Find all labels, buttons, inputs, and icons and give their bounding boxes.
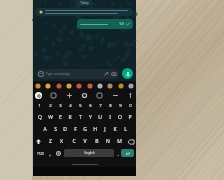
button[interactable]: C xyxy=(69,137,78,146)
button[interactable]: , xyxy=(46,149,54,158)
button[interactable]: U xyxy=(95,111,105,123)
staticText: 2 xyxy=(49,103,52,109)
button[interactable]: Emoji xyxy=(107,83,113,89)
staticText: A xyxy=(43,126,47,133)
staticText: Today xyxy=(80,1,89,5)
button[interactable]: Y xyxy=(85,111,95,123)
staticText: 0 xyxy=(129,103,132,109)
button[interactable]: J xyxy=(100,123,110,135)
button[interactable]: Shift xyxy=(34,137,43,146)
staticText: 6 xyxy=(89,103,92,109)
button[interactable]: 5 xyxy=(75,100,85,111)
button[interactable]: English xyxy=(64,149,114,157)
button[interactable]: Keyboard xyxy=(35,92,42,99)
staticText: 9:41 xyxy=(119,22,125,26)
staticText: G xyxy=(83,126,87,133)
staticText: E xyxy=(59,114,62,121)
button[interactable]: O xyxy=(115,111,125,123)
button[interactable]: 4 xyxy=(65,100,75,111)
button[interactable]: A xyxy=(39,123,50,135)
staticText: T xyxy=(79,114,82,121)
button[interactable]: E xyxy=(55,111,65,123)
button[interactable]: Emoji xyxy=(97,83,103,89)
button[interactable]: V xyxy=(80,137,89,146)
button[interactable]: Q xyxy=(34,111,45,123)
button[interactable]: M xyxy=(115,137,124,146)
button[interactable]: Emoji xyxy=(36,69,119,79)
staticText: J xyxy=(104,126,106,133)
staticText: N xyxy=(106,138,110,145)
button[interactable]: 7 xyxy=(95,100,105,111)
button[interactable]: 1 xyxy=(34,100,45,111)
button[interactable]: Voice message xyxy=(122,68,133,79)
button[interactable]: 2 xyxy=(45,100,55,111)
staticText: ?123 xyxy=(37,152,44,156)
staticText: I xyxy=(109,114,111,121)
button[interactable]: I xyxy=(105,111,115,123)
button[interactable]: N xyxy=(103,137,112,146)
button[interactable] xyxy=(36,8,133,16)
staticText: Q xyxy=(38,114,42,121)
button[interactable]: Tool 5 xyxy=(112,92,119,99)
staticText: V xyxy=(83,138,87,145)
staticText: 4 xyxy=(69,103,72,109)
button[interactable]: Enter xyxy=(121,149,134,157)
staticText: D xyxy=(63,126,67,133)
button[interactable]: Emoji xyxy=(35,83,41,89)
staticText: W xyxy=(48,114,53,121)
staticText: O xyxy=(118,114,122,121)
button[interactable]: 9 xyxy=(115,100,125,111)
button[interactable]: Tool 1 xyxy=(50,92,57,99)
button[interactable]: Emoji xyxy=(118,83,124,89)
button[interactable]: 9:41 xyxy=(77,19,133,29)
button[interactable]: Emoji xyxy=(66,83,72,89)
button[interactable]: X xyxy=(57,137,66,146)
button[interactable]: Tool 2 xyxy=(66,92,73,99)
button[interactable]: S xyxy=(50,123,60,135)
button[interactable]: 6 xyxy=(85,100,95,111)
button[interactable]: Emoji xyxy=(45,83,51,89)
staticText: B xyxy=(95,138,99,145)
staticText: 1 xyxy=(38,103,41,109)
button[interactable]: G xyxy=(80,123,90,135)
button[interactable]: T xyxy=(75,111,85,123)
staticText: Y xyxy=(89,114,92,121)
staticText: H xyxy=(93,126,97,133)
button[interactable]: F xyxy=(70,123,80,135)
staticText: F xyxy=(74,126,77,133)
button[interactable]: K xyxy=(110,123,120,135)
button[interactable]: Z xyxy=(46,137,55,146)
button[interactable]: P xyxy=(125,111,135,123)
button[interactable]: Emoji xyxy=(76,83,82,89)
button[interactable]: Tool 6 xyxy=(127,92,134,99)
button[interactable]: ?123 xyxy=(35,149,46,158)
button[interactable]: 0 xyxy=(125,100,135,111)
staticText: Type a message xyxy=(46,72,103,76)
button[interactable]: D xyxy=(60,123,70,135)
staticText: 9 xyxy=(119,103,122,109)
staticText: 7 xyxy=(99,103,102,109)
button[interactable]: L xyxy=(120,123,130,135)
button[interactable]: Emoji xyxy=(56,83,62,89)
staticText: U xyxy=(98,114,102,121)
staticText: , xyxy=(49,151,51,157)
button[interactable]: 3 xyxy=(55,100,65,111)
button[interactable]: 8 xyxy=(105,100,115,111)
staticText: English xyxy=(84,151,95,155)
button[interactable]: Emoji xyxy=(128,83,134,89)
button[interactable]: W xyxy=(45,111,55,123)
button[interactable]: . xyxy=(115,149,121,158)
button[interactable]: Emoji xyxy=(87,83,93,89)
button[interactable]: R xyxy=(65,111,75,123)
staticText: M xyxy=(117,138,122,145)
button[interactable]: Settings xyxy=(54,149,63,158)
staticText: 3 xyxy=(59,103,62,109)
button[interactable]: Backspace xyxy=(126,137,135,146)
button[interactable]: B xyxy=(92,137,101,146)
button[interactable]: Tool 3 xyxy=(81,92,88,99)
staticText: R xyxy=(68,114,72,121)
staticText: C xyxy=(72,138,76,145)
button[interactable]: Tool 4 xyxy=(96,92,103,99)
staticText: L xyxy=(124,126,127,133)
button[interactable]: H xyxy=(90,123,100,135)
